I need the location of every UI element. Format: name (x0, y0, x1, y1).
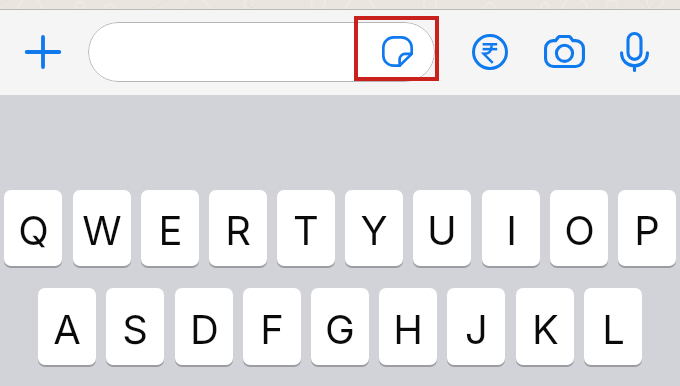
button[interactable]: J (447, 288, 505, 365)
staticText: A (53, 305, 81, 353)
staticText: G (325, 305, 355, 353)
button[interactable]: Stickers (382, 36, 413, 67)
button[interactable]: Payments (472, 34, 508, 70)
staticText: L (602, 305, 625, 353)
button[interactable]: Q (4, 190, 62, 266)
button[interactable]: W (73, 190, 131, 266)
button[interactable]: L (584, 288, 642, 365)
button[interactable]: E (141, 190, 199, 266)
staticText: K (532, 305, 559, 353)
button[interactable]: S (106, 288, 164, 365)
button[interactable]: Y (345, 190, 403, 266)
button[interactable] (88, 22, 435, 82)
staticText: Q (18, 206, 49, 254)
button[interactable]: G (311, 288, 369, 365)
staticText: D (190, 305, 219, 353)
staticText: J (465, 305, 488, 353)
staticText: W (82, 206, 122, 254)
button[interactable]: D (175, 288, 233, 365)
button[interactable]: T (277, 190, 335, 266)
staticText: I (506, 206, 517, 254)
button[interactable]: F (243, 288, 301, 365)
button[interactable]: Voice message (620, 32, 649, 72)
button[interactable]: R (209, 190, 267, 266)
button[interactable]: Add attachment (17, 26, 69, 78)
staticText: S (122, 305, 148, 353)
staticText: F (260, 305, 284, 353)
button[interactable]: I (482, 190, 540, 266)
staticText: P (634, 206, 660, 254)
button[interactable]: P (618, 190, 676, 266)
staticText: T (293, 206, 319, 254)
staticText: Y (360, 206, 388, 254)
staticText: H (393, 305, 423, 353)
button[interactable]: O (550, 190, 608, 266)
button[interactable]: H (379, 288, 437, 365)
staticText: O (564, 206, 595, 254)
button[interactable]: U (413, 190, 471, 266)
staticText: R (225, 206, 251, 254)
staticText: U (427, 206, 457, 254)
button[interactable]: Camera (544, 35, 585, 68)
button[interactable]: A (38, 288, 96, 365)
staticText: E (158, 206, 183, 254)
button[interactable]: K (516, 288, 574, 365)
